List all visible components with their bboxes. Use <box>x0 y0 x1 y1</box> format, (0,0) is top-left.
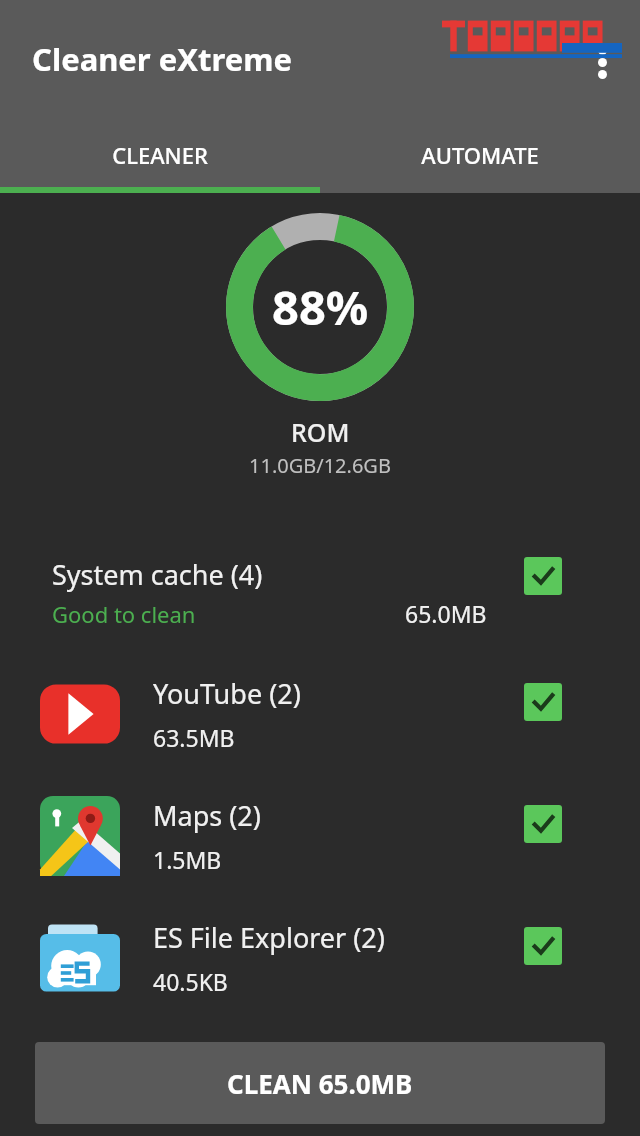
staticText: ES File Explorer (2) <box>153 919 385 956</box>
staticText: 11.0GB/12.6GB <box>249 452 391 479</box>
button[interactable]: Selected <box>524 557 562 595</box>
staticText: 40.5KB <box>153 966 228 997</box>
button[interactable]: ES File Explorer (2) <box>0 897 640 1019</box>
button[interactable]: CLEANER <box>0 117 320 193</box>
staticText: 1.5MB <box>153 844 222 875</box>
staticText: CLEAN 65.0MB <box>227 1066 413 1101</box>
button[interactable]: Maps (2) <box>0 775 640 897</box>
button[interactable]: Selected <box>524 805 562 843</box>
staticText: 88% <box>272 275 369 339</box>
button[interactable]: CLEAN 65.0MB <box>35 1042 605 1124</box>
staticText: AUTOMATE <box>421 140 539 170</box>
staticText: ROM <box>291 415 350 449</box>
button[interactable]: System cache (4) <box>0 531 640 653</box>
button[interactable]: Selected <box>524 927 562 965</box>
button[interactable]: More options <box>580 40 624 84</box>
button[interactable]: Selected <box>524 683 562 721</box>
staticText: 63.5MB <box>153 722 235 753</box>
staticText: System cache (4) <box>52 556 263 593</box>
staticText: CLEANER <box>112 140 208 170</box>
staticText: 65.0MB <box>405 598 487 629</box>
staticText: Maps (2) <box>153 797 261 834</box>
staticText: YouTube (2) <box>153 675 301 712</box>
staticText: Cleaner eXtreme <box>32 38 292 80</box>
button[interactable]: AUTOMATE <box>320 117 640 193</box>
button[interactable]: YouTube (2) <box>0 653 640 775</box>
staticText: Good to clean <box>52 599 196 629</box>
